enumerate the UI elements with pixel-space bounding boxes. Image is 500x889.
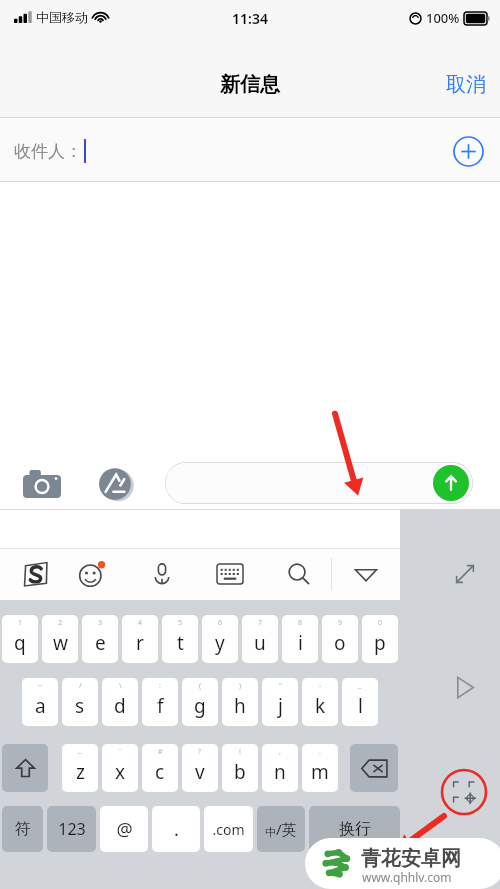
button[interactable]: 5 <box>162 615 198 663</box>
button[interactable]: 0 <box>362 615 398 663</box>
button[interactable]: ( <box>182 678 218 726</box>
button[interactable]: 7 <box>242 615 278 663</box>
staticText: _ <box>358 681 362 691</box>
button[interactable]: " <box>262 678 298 726</box>
staticText: 5 <box>178 618 183 628</box>
button[interactable]: @ <box>100 806 148 852</box>
button[interactable]: 6 <box>202 615 238 663</box>
staticText: - <box>319 681 322 691</box>
button[interactable]: 3 <box>82 615 118 663</box>
staticText: @ <box>116 817 133 842</box>
button[interactable]: . <box>302 744 338 792</box>
button[interactable]: Backspace <box>350 744 398 792</box>
button[interactable]: ) <box>222 678 258 726</box>
button[interactable]: # <box>142 744 178 792</box>
button[interactable]: .com <box>204 806 253 852</box>
button[interactable]: 123 <box>47 806 96 852</box>
staticText: v <box>195 759 205 785</box>
button[interactable]: , <box>262 744 298 792</box>
staticText: … <box>77 747 83 757</box>
button[interactable]: ? <box>182 744 218 792</box>
staticText: h <box>234 693 246 719</box>
staticText: u <box>254 630 266 656</box>
staticText: n <box>274 759 286 785</box>
button[interactable]: 9 <box>322 615 358 663</box>
staticText: www.qhhlv.com <box>362 869 452 885</box>
button[interactable]: Send <box>433 465 469 501</box>
staticText: 123 <box>58 818 86 840</box>
button[interactable]: 中 <box>257 806 305 852</box>
staticText: , <box>279 747 281 757</box>
button[interactable]: : <box>142 678 178 726</box>
button[interactable]: Keyboard <box>208 552 252 596</box>
button[interactable]: Emoji <box>70 552 114 596</box>
button[interactable]: ` <box>102 744 138 792</box>
staticText: : <box>159 681 161 691</box>
staticText: 9 <box>338 618 343 628</box>
staticText: s <box>75 693 85 719</box>
button[interactable]: 换行 <box>309 806 400 852</box>
staticText: 收件人： <box>14 141 82 162</box>
staticText: ! <box>239 747 241 757</box>
staticText: 青花安卓网 <box>361 846 461 871</box>
staticText: l <box>358 693 363 719</box>
button[interactable]: \ <box>102 678 138 726</box>
button[interactable]: / <box>62 678 98 726</box>
button[interactable]: Play <box>443 665 487 709</box>
button[interactable]: Sogou input <box>14 552 58 596</box>
staticText: o <box>334 630 346 656</box>
staticText: j <box>278 693 283 719</box>
staticText: t <box>177 630 184 656</box>
staticText: k <box>315 693 326 719</box>
button[interactable]: Send <box>165 462 473 504</box>
button[interactable]: . <box>152 806 200 852</box>
staticText: y <box>215 630 225 656</box>
staticText: g <box>194 693 206 719</box>
button[interactable]: 2 <box>42 615 78 663</box>
button[interactable]: Camera <box>14 466 70 502</box>
staticText: ~ <box>38 681 43 691</box>
staticText: m <box>311 759 329 785</box>
button[interactable]: 取消 <box>446 72 486 97</box>
staticText: 0 <box>378 618 383 628</box>
staticText: ( <box>199 681 202 691</box>
staticText: 4 <box>138 618 143 628</box>
staticText: ? <box>198 747 202 757</box>
button[interactable]: 1 <box>2 615 38 663</box>
button[interactable]: ~ <box>22 678 58 726</box>
staticText: 取消 <box>446 72 486 97</box>
staticText: i <box>298 630 303 656</box>
button[interactable]: Shift <box>2 744 48 792</box>
button[interactable]: 8 <box>282 615 318 663</box>
button[interactable]: Hide keyboard <box>344 552 388 596</box>
staticText: 11:34 <box>232 9 268 28</box>
button[interactable]: _ <box>342 678 378 726</box>
staticText: a <box>35 693 46 719</box>
staticText: \ <box>119 681 122 691</box>
button[interactable]: Add contact <box>446 129 490 173</box>
button[interactable]: Search <box>277 552 321 596</box>
button[interactable]: 4 <box>122 615 158 663</box>
button[interactable]: Expand keyboard <box>443 552 487 596</box>
staticText: w <box>53 630 68 656</box>
staticText: 中 <box>265 825 276 839</box>
button[interactable]: 符 <box>2 806 43 852</box>
staticText: e <box>95 630 106 656</box>
button[interactable]: - <box>302 678 338 726</box>
staticText: / <box>79 681 82 691</box>
staticText: /英 <box>276 819 297 839</box>
button[interactable]: Move keyboard <box>442 770 486 814</box>
staticText: p <box>374 630 386 656</box>
button[interactable]: … <box>62 744 98 792</box>
staticText: " <box>279 681 282 691</box>
button[interactable]: App Store <box>96 464 136 504</box>
staticText: 1 <box>18 618 23 628</box>
staticText: q <box>14 630 26 656</box>
staticText: 3 <box>98 618 103 628</box>
button[interactable]: Voice input <box>140 552 184 596</box>
staticText: 换行 <box>339 819 371 839</box>
button[interactable]: ! <box>222 744 258 792</box>
staticText: c <box>155 759 165 785</box>
staticText: r <box>136 630 144 656</box>
staticText: b <box>234 759 246 785</box>
